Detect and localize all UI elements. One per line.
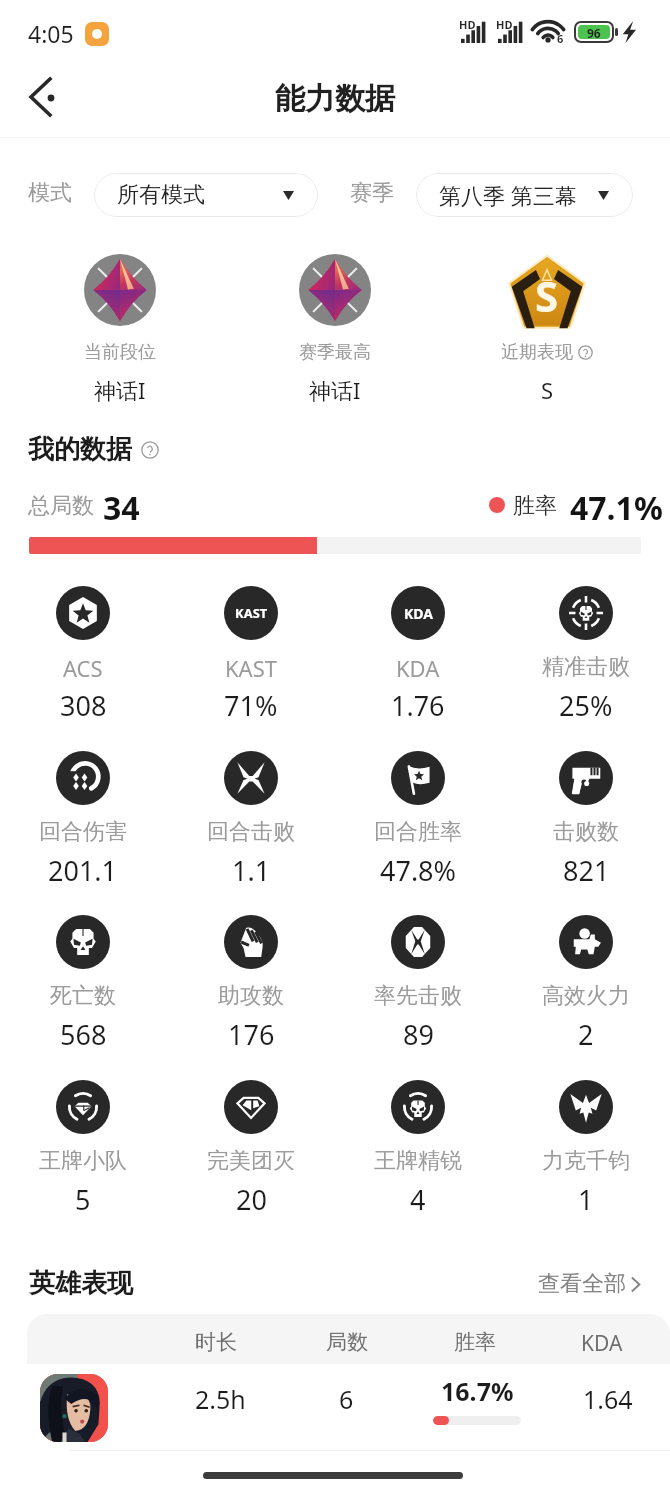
staticText: 助攻数 bbox=[218, 982, 284, 1010]
button[interactable]: 死亡数 bbox=[5, 915, 161, 1055]
staticText: S bbox=[541, 375, 554, 405]
staticText: 25% bbox=[559, 687, 613, 724]
button[interactable]: 回合伤害 bbox=[5, 751, 161, 891]
staticText: 时长 bbox=[195, 1329, 237, 1355]
staticText: KAST bbox=[235, 604, 268, 622]
staticText: 总局数 bbox=[28, 492, 94, 520]
staticText: S bbox=[535, 267, 559, 324]
staticText: 6 bbox=[557, 31, 564, 46]
staticText: 所有模式 bbox=[117, 181, 205, 209]
staticText: HD bbox=[459, 17, 476, 32]
staticText: 5 bbox=[75, 1181, 91, 1218]
staticText: 47.1% bbox=[570, 486, 663, 530]
staticText: 完美团灭 bbox=[207, 1147, 295, 1175]
staticText: 神话I bbox=[309, 375, 361, 405]
button[interactable]: 查看全部 bbox=[538, 1268, 642, 1298]
button[interactable]: 击败数 bbox=[508, 751, 664, 891]
button[interactable]: Back bbox=[8, 62, 78, 132]
staticText: ACS bbox=[63, 653, 103, 683]
staticText: 568 bbox=[60, 1016, 107, 1053]
button[interactable]: 率先击败 bbox=[340, 915, 496, 1055]
staticText: KDA bbox=[404, 604, 433, 623]
staticText: 我的数据 bbox=[28, 433, 132, 466]
staticText: 能力数据 bbox=[275, 80, 395, 118]
staticText: 力克千钧 bbox=[542, 1147, 630, 1175]
staticText: 查看全部 bbox=[538, 1270, 626, 1298]
staticText: 20 bbox=[236, 1181, 267, 1218]
staticText: 1.76 bbox=[391, 687, 445, 724]
staticText: 赛季最高 bbox=[299, 341, 371, 364]
staticText: 176 bbox=[228, 1016, 275, 1053]
staticText: 模式 bbox=[28, 179, 72, 207]
staticText: 4 bbox=[410, 1181, 426, 1218]
staticText: 率先击败 bbox=[374, 982, 462, 1010]
button[interactable]: 高效火力 bbox=[508, 915, 664, 1055]
staticText: HD bbox=[496, 17, 513, 32]
button[interactable]: 回合胜率 bbox=[340, 751, 496, 891]
button[interactable]: 所有模式 bbox=[94, 173, 318, 217]
staticText: 201.1 bbox=[48, 852, 118, 889]
staticText: 2 bbox=[578, 1016, 594, 1053]
staticText: 71% bbox=[224, 687, 278, 724]
staticText: 2.5h bbox=[195, 1382, 246, 1416]
staticText: 赛季 bbox=[350, 179, 394, 207]
staticText: 16.7% bbox=[441, 1374, 514, 1408]
staticText: 胜率 bbox=[454, 1329, 496, 1355]
button[interactable]: KDA bbox=[340, 586, 496, 726]
staticText: 精准击败 bbox=[542, 653, 630, 681]
staticText: 第八季 第三幕 bbox=[439, 180, 577, 210]
staticText: 308 bbox=[60, 687, 107, 724]
button[interactable]: 助攻数 bbox=[173, 915, 329, 1055]
button[interactable]: 精准击败 bbox=[508, 586, 664, 726]
staticText: 47.8% bbox=[380, 852, 457, 889]
button[interactable]: 力克千钧 bbox=[508, 1080, 664, 1220]
button[interactable]: 赛季最高 bbox=[255, 341, 415, 411]
staticText: 回合胜率 bbox=[374, 818, 462, 846]
button[interactable]: ACS bbox=[5, 586, 161, 726]
staticText: 当前段位 bbox=[84, 341, 156, 364]
staticText: 高效火力 bbox=[542, 982, 630, 1010]
staticText: 96 bbox=[587, 25, 601, 39]
staticText: 4:05 bbox=[28, 18, 74, 49]
staticText: 死亡数 bbox=[50, 982, 116, 1010]
staticText: 1.64 bbox=[583, 1382, 633, 1416]
staticText: 34 bbox=[103, 486, 140, 530]
staticText: 胜率 bbox=[513, 492, 557, 520]
staticText: KDA bbox=[396, 653, 440, 683]
staticText: KDA bbox=[581, 1329, 623, 1357]
staticText: 局数 bbox=[326, 1329, 368, 1355]
button[interactable]: 王牌精锐 bbox=[340, 1080, 496, 1220]
staticText: 王牌小队 bbox=[39, 1147, 127, 1175]
staticText: 1 bbox=[578, 1181, 594, 1218]
staticText: 近期表现 bbox=[501, 341, 573, 364]
staticText: 王牌精锐 bbox=[374, 1147, 462, 1175]
staticText: 89 bbox=[403, 1016, 434, 1053]
staticText: 821 bbox=[563, 852, 610, 889]
staticText: 击败数 bbox=[553, 818, 619, 846]
staticText: 6 bbox=[339, 1382, 354, 1416]
staticText: 神话I bbox=[94, 375, 146, 405]
button[interactable]: 近期表现 bbox=[467, 341, 627, 411]
button[interactable]: 王牌小队 bbox=[5, 1080, 161, 1220]
staticText: KAST bbox=[225, 653, 277, 683]
staticText: 英雄表现 bbox=[29, 1267, 133, 1300]
button[interactable]: Hero avatar bbox=[40, 1374, 108, 1442]
staticText: 回合击败 bbox=[207, 818, 295, 846]
button[interactable]: 第八季 第三幕 bbox=[416, 173, 633, 217]
button[interactable]: 回合击败 bbox=[173, 751, 329, 891]
button[interactable]: KAST bbox=[173, 586, 329, 726]
staticText: 回合伤害 bbox=[39, 818, 127, 846]
button[interactable]: 完美团灭 bbox=[173, 1080, 329, 1220]
button[interactable]: 当前段位 bbox=[40, 341, 200, 411]
staticText: 1.1 bbox=[232, 852, 271, 889]
